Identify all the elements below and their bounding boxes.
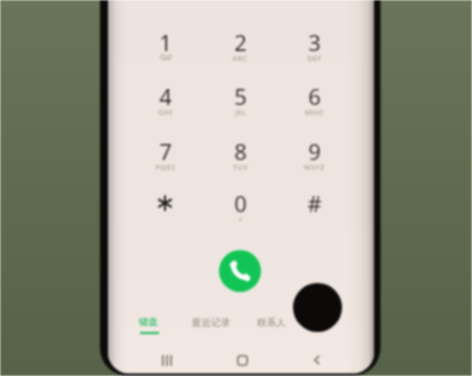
button[interactable]: 5 xyxy=(203,81,277,121)
button[interactable]: Call xyxy=(219,250,261,292)
staticText: 3 xyxy=(308,27,321,57)
button[interactable]: 4 xyxy=(128,81,202,121)
staticText: TUV xyxy=(233,163,248,173)
button[interactable] xyxy=(128,188,202,228)
staticText: JKL xyxy=(235,108,247,118)
staticText: 最近记录 xyxy=(192,317,231,329)
staticText: 4 xyxy=(159,81,172,111)
staticText: 1 xyxy=(159,27,172,57)
staticText: 9 xyxy=(308,136,321,166)
button[interactable]: 0 xyxy=(203,188,277,228)
staticText: 8 xyxy=(234,136,247,166)
staticText: 0 xyxy=(234,188,247,218)
button[interactable]: 最近记录 xyxy=(179,317,243,345)
staticText: 2 xyxy=(234,27,247,57)
staticText: PQRS xyxy=(155,163,176,173)
button[interactable]: 键盘 xyxy=(117,316,181,344)
button[interactable]: Back xyxy=(303,346,331,374)
button[interactable]: 1 xyxy=(128,27,202,67)
button[interactable]: 联系人 xyxy=(239,317,303,345)
button[interactable]: Home xyxy=(228,346,256,374)
staticText: 6 xyxy=(308,81,321,111)
staticText: # xyxy=(307,188,322,218)
button[interactable]: 8 xyxy=(203,136,277,176)
staticText: ABC xyxy=(232,54,248,64)
staticText: + xyxy=(238,215,243,225)
staticText: 5 xyxy=(234,81,247,111)
staticText: GHI xyxy=(158,108,173,118)
button[interactable]: 2 xyxy=(203,27,277,67)
button[interactable]: 6 xyxy=(277,81,351,121)
staticText: WXYZ xyxy=(304,163,325,173)
button[interactable]: Recent apps xyxy=(153,346,181,374)
staticText: 7 xyxy=(159,136,172,166)
staticText: DEF xyxy=(307,54,322,64)
staticText: MNO xyxy=(305,108,324,118)
button[interactable]: # xyxy=(277,188,351,228)
staticText: 键盘 xyxy=(139,316,159,328)
button[interactable]: 9 xyxy=(277,136,351,176)
button[interactable]: 3 xyxy=(277,27,351,67)
button[interactable]: 7 xyxy=(128,136,202,176)
staticText: 联系人 xyxy=(257,317,286,329)
